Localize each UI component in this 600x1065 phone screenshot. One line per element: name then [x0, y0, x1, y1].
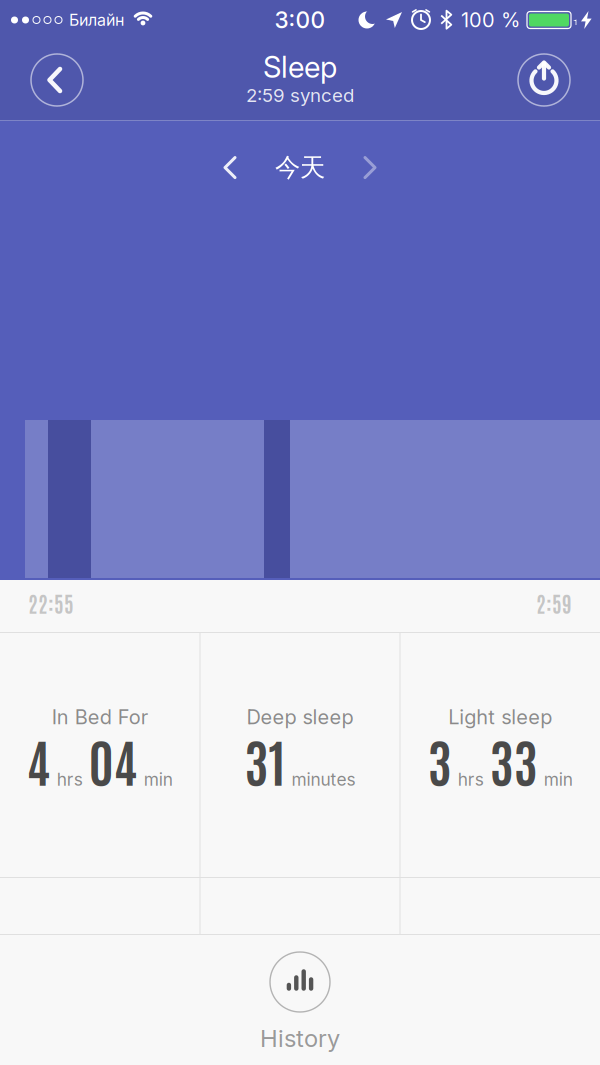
staticText: 2:59 — [536, 589, 572, 617]
staticText: 3:00 — [274, 7, 325, 33]
staticText: 33 — [490, 727, 538, 793]
staticText: Deep sleep — [246, 705, 353, 729]
button[interactable]: Next day — [352, 153, 388, 183]
staticText: 3 — [428, 727, 452, 793]
staticText: 31 — [244, 727, 285, 793]
staticText: 22:55 — [28, 589, 74, 617]
staticText: 今天 — [275, 152, 325, 183]
staticText: 4 — [27, 727, 51, 793]
staticText: hrs — [458, 769, 484, 790]
staticText: Sleep — [263, 50, 337, 84]
staticText: hrs — [57, 769, 83, 790]
staticText: History — [260, 1024, 340, 1052]
button[interactable]: Share — [518, 54, 570, 106]
staticText: min — [544, 769, 573, 790]
staticText: 100 % — [461, 8, 520, 32]
staticText: min — [144, 769, 173, 790]
button[interactable]: Back — [31, 54, 83, 106]
staticText: In Bed For — [52, 705, 148, 729]
staticText: 2:59 synced — [246, 84, 354, 106]
staticText: 04 — [89, 727, 138, 793]
staticText: minutes — [291, 769, 355, 790]
staticText: Light sleep — [448, 705, 552, 729]
staticText: Билайн — [69, 11, 124, 29]
button[interactable]: History — [260, 952, 340, 1052]
button[interactable]: Previous day — [212, 153, 248, 183]
